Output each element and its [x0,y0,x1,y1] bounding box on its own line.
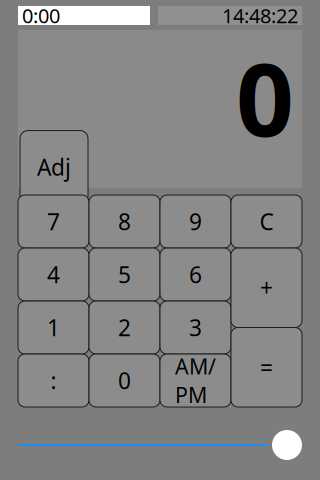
button[interactable]: AM/PM [160,354,231,407]
button[interactable]: 4 [18,248,89,301]
staticText: 6 [189,259,202,289]
button[interactable]: + [231,248,302,327]
button[interactable]: 8 [89,195,160,248]
staticText: 8 [118,206,131,236]
button[interactable]: 3 [160,301,231,354]
staticText: 0 [236,30,294,165]
button[interactable]: 5 [89,248,160,301]
staticText: 14:48:22 [222,2,298,29]
button[interactable]: Adj [20,131,88,204]
staticText: 2 [118,312,131,342]
staticText: 0 [118,365,131,395]
staticText: = [260,352,273,382]
button[interactable]: 7 [18,195,89,248]
staticText: 4 [47,259,60,289]
staticText: 7 [47,206,60,236]
button[interactable]: 1 [18,301,89,354]
staticText: 0 [236,165,294,299]
staticText: : [50,365,56,395]
staticText: AM/PM [175,352,216,409]
button[interactable]: 0 [89,354,160,407]
button[interactable]: = [231,327,302,407]
staticText: 9 [189,206,202,236]
button[interactable]: 2 [89,301,160,354]
button[interactable]: 6 [160,248,231,301]
staticText: + [260,273,273,303]
staticText: C [259,206,273,236]
button[interactable]: : [18,354,89,407]
staticText: 1 [47,312,60,342]
staticText: 3 [189,312,202,342]
staticText: 5 [118,259,131,289]
staticText: 0:00 [22,2,60,29]
staticText: Adj [37,152,71,182]
button[interactable]: C [231,195,302,248]
button[interactable]: 9 [160,195,231,248]
